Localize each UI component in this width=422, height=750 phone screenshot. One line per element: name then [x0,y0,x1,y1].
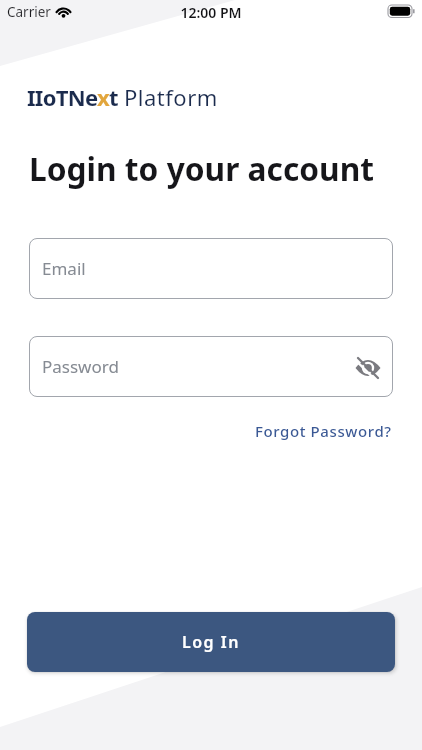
staticText: Login to your account [29,147,374,190]
staticText: Log In [182,631,240,653]
staticText: Email [42,257,86,280]
staticText: Password [42,355,119,378]
button[interactable]: Email [29,238,393,299]
button[interactable]: Password [29,336,393,397]
staticText: IIoTNext Platform [27,82,218,112]
button[interactable]: Forgot Password? [255,421,392,441]
button[interactable] [355,354,381,380]
staticText: Carrier [7,3,51,21]
staticText: 12:00 PM [0,3,422,22]
button[interactable]: Log In [27,612,395,672]
